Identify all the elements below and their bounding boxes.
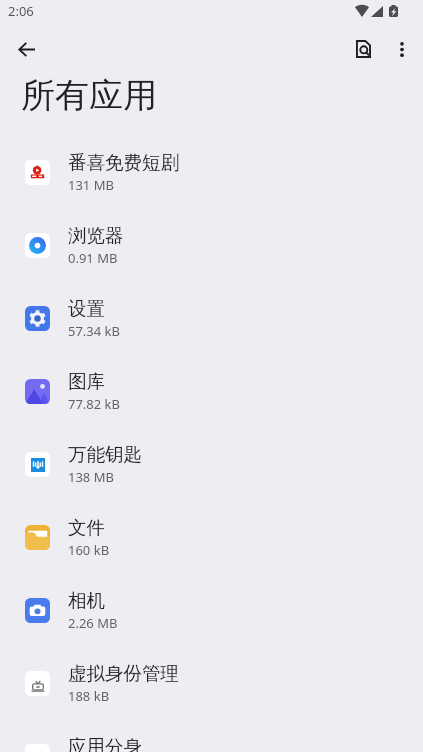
staticText: 138 MB — [68, 468, 114, 486]
button[interactable]: 番喜免费短剧 — [0, 136, 423, 209]
button[interactable]: Back — [7, 29, 47, 69]
staticText: 0.91 MB — [68, 249, 118, 267]
button[interactable]: 应用分身 — [0, 720, 423, 752]
staticText: 万能钥匙 — [68, 443, 142, 466]
staticText: 图库 — [68, 370, 105, 393]
button[interactable]: 图库 — [0, 355, 423, 428]
staticText: 188 kB — [68, 687, 110, 705]
staticText: 160 kB — [68, 541, 110, 559]
staticText: 57.34 kB — [68, 322, 121, 340]
staticText: 131 MB — [68, 176, 114, 194]
button[interactable]: 万能钥匙 — [0, 428, 423, 501]
staticText: 2.26 MB — [68, 614, 118, 632]
button[interactable]: More options — [382, 29, 422, 69]
staticText: 应用分身 — [68, 735, 142, 752]
staticText: 77.82 kB — [68, 395, 121, 413]
button[interactable]: 虚拟身份管理 — [0, 647, 423, 720]
button[interactable]: 文件 — [0, 501, 423, 574]
staticText: 番喜免费短剧 — [68, 151, 179, 174]
button[interactable]: Search — [343, 29, 383, 69]
button[interactable]: 相机 — [0, 574, 423, 647]
staticText: 相机 — [68, 589, 105, 612]
staticText: 所有应用 — [21, 74, 157, 117]
button[interactable]: 设置 — [0, 282, 423, 355]
staticText: 浏览器 — [68, 224, 124, 247]
staticText: 虚拟身份管理 — [68, 662, 179, 685]
staticText: 设置 — [68, 297, 105, 320]
button[interactable]: 浏览器 — [0, 209, 423, 282]
staticText: 2:06 — [8, 2, 34, 20]
staticText: 文件 — [68, 516, 105, 539]
